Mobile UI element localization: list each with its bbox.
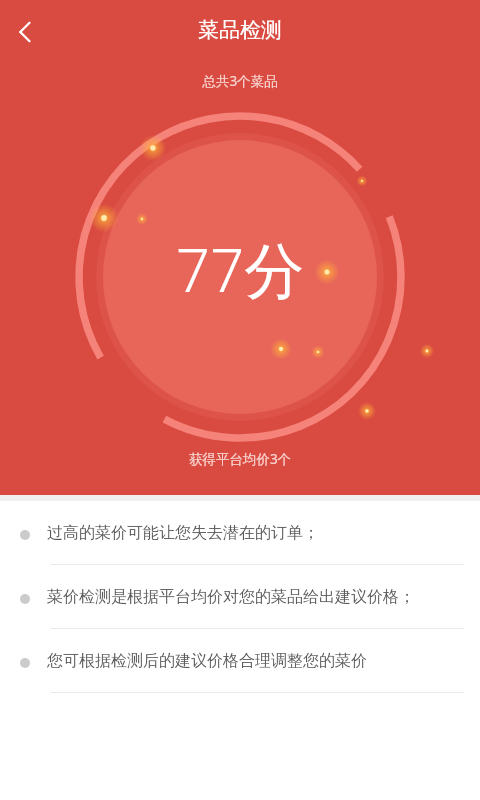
staticText: 77分: [0, 228, 480, 310]
staticText: 菜品检测: [0, 17, 480, 43]
staticText: 您可根据检测后的建议价格合理调整您的菜价: [47, 651, 367, 671]
staticText: 菜价检测是根据平台均价对您的菜品给出建议价格；: [47, 587, 415, 607]
button[interactable]: 菜价检测是根据平台均价对您的菜品给出建议价格；: [0, 565, 480, 629]
staticText: 过高的菜价可能让您失去潜在的订单；: [47, 523, 319, 543]
button[interactable]: 过高的菜价可能让您失去潜在的订单；: [0, 501, 480, 565]
button[interactable]: Back: [4, 10, 48, 54]
staticText: 获得平台均价3个: [0, 450, 480, 468]
button[interactable]: 您可根据检测后的建议价格合理调整您的菜价: [0, 629, 480, 693]
staticText: 总共3个菜品: [0, 72, 480, 90]
